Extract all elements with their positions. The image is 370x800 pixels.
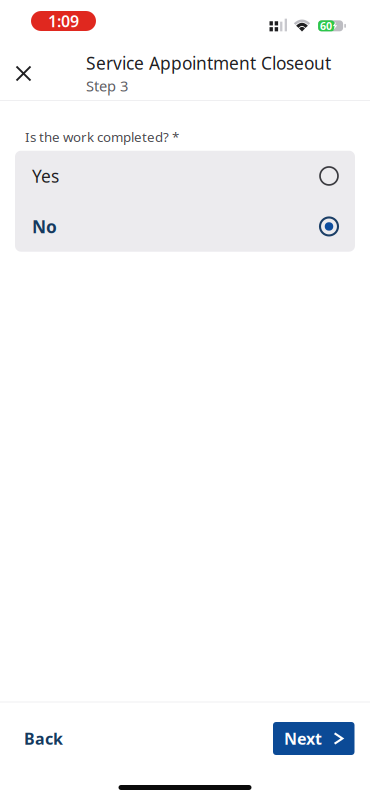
button[interactable]: Next <box>273 722 354 755</box>
staticText: Back <box>24 728 63 749</box>
button[interactable]: Close <box>0 50 47 97</box>
staticText: Next <box>284 728 322 749</box>
staticText: Service Appointment Closeout <box>86 51 331 74</box>
staticText: Is the work completed? * <box>25 128 179 146</box>
button[interactable]: Back <box>0 716 87 760</box>
staticText: No <box>32 215 57 238</box>
button[interactable]: No <box>15 201 355 252</box>
staticText: 60 <box>320 19 332 33</box>
staticText: Yes <box>32 164 59 187</box>
staticText: Step 3 <box>86 76 128 95</box>
staticText: 1:09 <box>48 10 79 32</box>
button[interactable]: Yes <box>15 151 355 201</box>
